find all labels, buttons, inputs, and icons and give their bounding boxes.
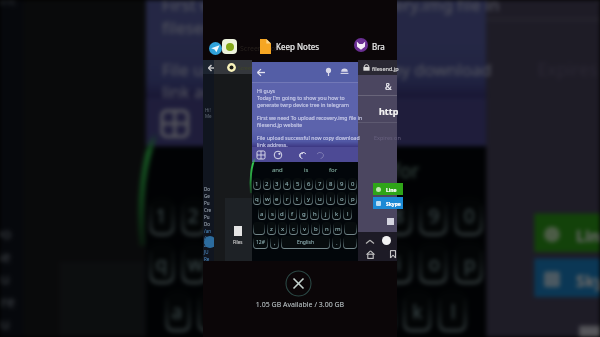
button[interactable]: 8 [326,178,335,190]
button[interactable]: 1 [253,178,261,190]
staticText: n [325,225,329,233]
button[interactable]: y [304,192,313,205]
button[interactable]: 5 [277,197,306,236]
button[interactable]: p [348,192,357,205]
button[interactable]: k [332,207,341,220]
staticText: 5 [287,204,300,230]
button[interactable]: k [403,291,432,332]
button[interactable]: 7 [315,178,324,190]
button[interactable]: g [299,207,308,220]
button[interactable]: 8 [383,197,412,236]
button[interactable]: 2 [263,178,271,190]
button[interactable]: 6 [304,178,313,190]
button[interactable]: c [289,222,298,235]
button[interactable]: 9 [337,178,346,190]
button[interactable] [344,222,357,235]
button[interactable]: h [332,291,361,332]
staticText: g [302,210,306,218]
button[interactable]: Hi guys [146,0,486,337]
staticText: m [335,225,341,233]
button[interactable]: l [438,291,467,332]
button[interactable]: Hi! [0,0,27,337]
staticText: 1.05 GB Available / 3.00 GB [203,300,397,310]
button[interactable]: s [268,207,276,220]
button[interactable]: . [332,236,341,249]
button[interactable]: w [181,242,207,284]
staticText: 1 [156,204,168,230]
button[interactable]: 9 [419,197,448,236]
button[interactable]: 6 [313,197,342,236]
button[interactable]: r [245,242,271,284]
staticText: 4 [285,180,289,188]
button[interactable]: 7 [348,197,377,236]
button[interactable]: z [267,222,276,235]
button[interactable]: a [258,207,266,220]
button[interactable]: 4 [245,197,271,236]
staticText: filesend.jp [372,65,399,72]
button[interactable]: 12# [253,236,268,249]
button[interactable]: Clear all recent apps [285,270,312,297]
button[interactable]: h [310,207,319,220]
button[interactable]: t [293,192,302,205]
button[interactable]: u [348,242,377,284]
button[interactable]: Screen rec [24,0,146,337]
button[interactable]: 4 [283,178,291,190]
button[interactable]: i [383,242,412,284]
button[interactable]: e [273,192,281,205]
button[interactable]: 2 [181,197,207,236]
staticText: Me [0,0,18,8]
button[interactable]: o [419,242,448,284]
button[interactable]: r [283,192,291,205]
button[interactable]: filesend.jp [358,60,397,261]
button[interactable]: g [297,291,326,332]
staticText: 8 [329,180,333,188]
button[interactable]: l [343,207,352,220]
button[interactable]: b [311,222,320,235]
button[interactable]: u [315,192,324,205]
button[interactable]: t [277,242,306,284]
button[interactable]: j [321,207,330,220]
button[interactable]: v [300,222,309,235]
staticText: Re [204,256,210,262]
staticText: b [314,225,318,233]
button[interactable]: 5 [293,178,302,190]
button[interactable] [343,236,357,249]
button[interactable]: 0 [348,178,357,190]
staticText: d [280,210,284,218]
button[interactable]: q [149,242,175,284]
button[interactable]: 0 [454,197,483,236]
button[interactable]: English [281,236,330,249]
staticText: h [342,300,354,326]
staticText: link address. [162,79,261,101]
button[interactable]: f [288,207,297,220]
button[interactable]: s [197,291,223,332]
button[interactable]: d [278,207,286,220]
button[interactable]: 1 [149,197,175,236]
button[interactable]: f [261,291,290,332]
button[interactable]: , [270,236,279,249]
button[interactable] [253,222,265,235]
button[interactable]: filesend.jp [486,0,600,337]
button[interactable]: 3 [213,197,239,236]
button[interactable]: x [278,222,287,235]
button[interactable]: p [454,242,483,284]
staticText: 0 [351,180,355,188]
button[interactable]: Screen rec [214,60,252,261]
button[interactable]: o [337,192,346,205]
button[interactable]: 3 [273,178,281,190]
button[interactable]: n [322,222,331,235]
button[interactable]: y [313,242,342,284]
button[interactable]: m [333,222,342,235]
button[interactable]: q [253,192,261,205]
button[interactable]: Hi! [203,60,215,261]
button[interactable]: w [263,192,271,205]
button[interactable]: i [326,192,335,205]
button[interactable]: Hi guys [252,62,358,261]
button[interactable]: e [213,242,239,284]
button[interactable]: a [165,291,191,332]
staticText: w [265,195,270,203]
